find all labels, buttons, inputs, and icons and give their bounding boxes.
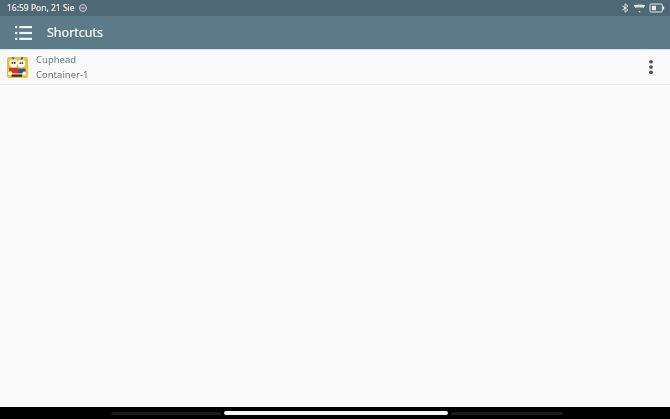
button[interactable]: Home — [224, 411, 448, 415]
button[interactable]: Cuphead — [0, 50, 670, 84]
staticText: Cuphead — [36, 53, 77, 66]
button[interactable]: Open navigation menu — [8, 18, 38, 48]
staticText: Shortcuts — [47, 24, 104, 41]
staticText: 16:59 Pon, 21 Sie — [7, 2, 75, 14]
button[interactable]: More options — [636, 52, 666, 82]
staticText: Container-1 — [36, 68, 89, 81]
